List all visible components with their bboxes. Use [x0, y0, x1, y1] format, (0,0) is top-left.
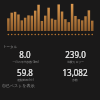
staticText: 59.8 [17, 67, 33, 78]
button[interactable]: 59.8 [0, 67, 50, 82]
button[interactable]: 8.0 [0, 49, 50, 64]
button[interactable]: 239.0 [50, 49, 100, 64]
staticText: 消費カロリー [67, 60, 84, 64]
staticText: 239.0 [65, 49, 86, 60]
staticText: 歩数 [72, 78, 78, 82]
staticText: 自己ベストを表示 [2, 83, 35, 88]
staticText: 13,082 [62, 67, 88, 78]
staticText: 8.0 [19, 49, 31, 60]
staticText: 一日の平均歩数 (km) [12, 60, 39, 64]
staticText: トータル [3, 45, 18, 49]
button[interactable]: 自己ベストを表示 [0, 80, 100, 90]
button[interactable]: 13,082 [50, 67, 100, 82]
staticText: 運動時間 (分) [17, 78, 34, 82]
